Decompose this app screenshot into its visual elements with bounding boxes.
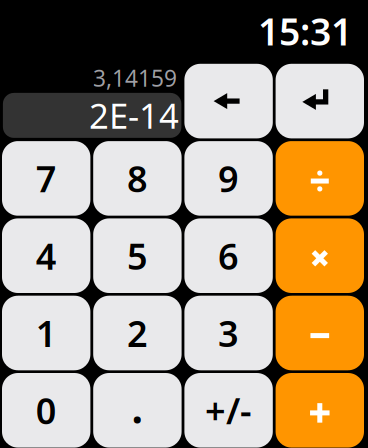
button[interactable]: 3 xyxy=(184,296,273,370)
staticText: 3,14159 xyxy=(93,63,177,93)
staticText: 2E-14 xyxy=(89,92,179,138)
button[interactable]: +/- xyxy=(184,373,273,448)
button[interactable]: 2 xyxy=(93,296,182,370)
button[interactable]: 9 xyxy=(184,141,273,216)
button[interactable]: . xyxy=(93,373,182,448)
staticText: 15:31 xyxy=(258,6,352,56)
button[interactable]: Subtract xyxy=(276,296,364,370)
button[interactable]: 4 xyxy=(2,218,90,293)
button[interactable]: 5 xyxy=(93,218,182,293)
staticText: . xyxy=(131,376,144,436)
button[interactable]: Divide xyxy=(276,141,364,216)
staticText: 4 xyxy=(36,232,57,280)
staticText: +/- xyxy=(205,386,252,434)
button[interactable]: 1 xyxy=(2,296,90,370)
button[interactable]: Equals xyxy=(276,64,364,138)
button[interactable]: Delete xyxy=(184,64,273,138)
staticText: 5 xyxy=(127,232,148,280)
button[interactable]: 8 xyxy=(93,141,182,216)
staticText: 2 xyxy=(127,309,148,357)
staticText: 3 xyxy=(218,309,239,357)
staticText: 6 xyxy=(218,232,239,280)
staticText: 9 xyxy=(218,154,239,202)
button[interactable]: 7 xyxy=(2,141,90,216)
staticText: 1 xyxy=(36,309,57,357)
button[interactable]: 0 xyxy=(2,373,90,448)
staticText: 7 xyxy=(36,154,57,202)
button[interactable]: Add xyxy=(276,373,364,448)
button[interactable]: Multiply xyxy=(276,218,364,293)
staticText: 8 xyxy=(127,154,148,202)
button[interactable]: 6 xyxy=(184,218,273,293)
staticText: 0 xyxy=(36,386,57,434)
